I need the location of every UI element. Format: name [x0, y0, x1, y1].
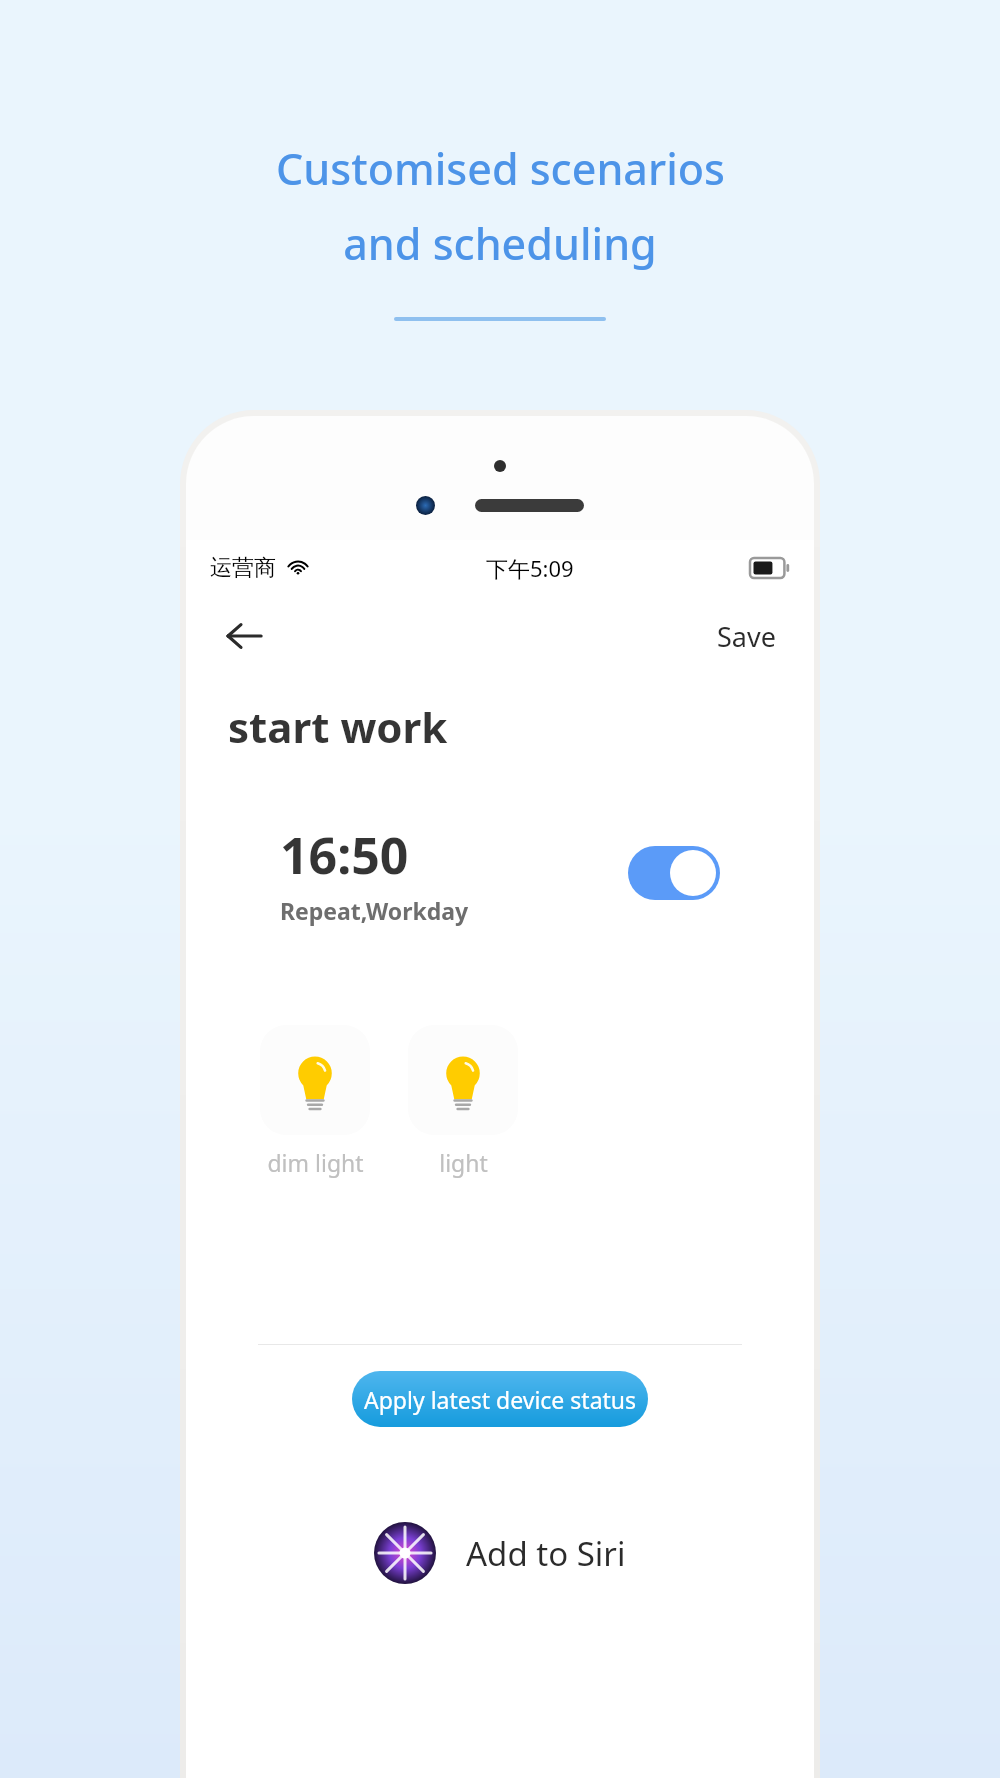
- staticText: Add to Siri: [466, 1531, 626, 1576]
- staticText: dim light: [267, 1147, 364, 1178]
- staticText: 下午5:09: [486, 553, 574, 583]
- staticText: 运营商: [210, 554, 276, 582]
- staticText: 16:50: [280, 821, 409, 889]
- staticText: and scheduling: [343, 214, 657, 273]
- staticText: Apply latest device status: [364, 1384, 637, 1415]
- staticText: Customised scenarios: [276, 139, 725, 198]
- button[interactable]: 16:50: [228, 783, 772, 963]
- staticText: light: [439, 1147, 488, 1178]
- button[interactable]: Back: [216, 608, 272, 664]
- button[interactable]: Add to Siri: [228, 1483, 772, 1623]
- staticText: start work: [228, 698, 448, 755]
- staticText: Save: [717, 618, 776, 655]
- button[interactable]: Apply latest device status: [352, 1371, 648, 1427]
- button[interactable]: Enable schedule: [628, 846, 720, 900]
- button[interactable]: dim light: [260, 1025, 370, 1178]
- staticText: Repeat,Workday: [280, 895, 469, 926]
- button[interactable]: Save: [709, 610, 784, 663]
- button[interactable]: light: [408, 1025, 518, 1178]
